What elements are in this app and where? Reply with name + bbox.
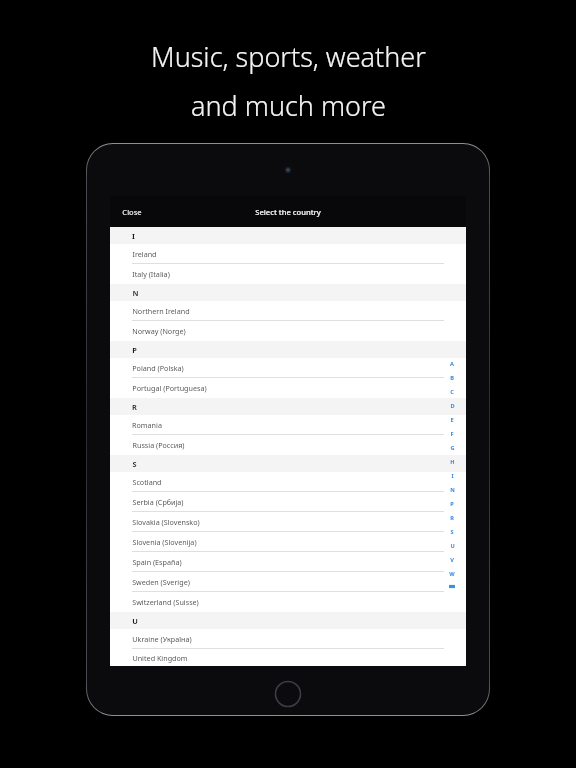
staticText: I [451, 472, 454, 480]
button[interactable]: Portugal (Portuguesa) [110, 378, 466, 398]
button[interactable]: Serbia (Србија) [110, 492, 466, 512]
staticText: V [450, 556, 454, 564]
staticText: Ukraine (Україна) [132, 634, 192, 644]
staticText: W [449, 570, 455, 578]
staticText: Slovenia (Slovenija) [132, 537, 197, 547]
button[interactable]: United Kingdom [110, 649, 466, 666]
staticText: G [450, 444, 455, 452]
button[interactable]: Spain (España) [110, 552, 466, 572]
staticText: Russia (Россия) [132, 440, 185, 450]
staticText: Norway (Norge) [132, 326, 186, 336]
staticText: Northern Ireland [132, 306, 190, 316]
staticText: Romania [132, 420, 162, 430]
staticText: F [450, 430, 454, 438]
staticText: Switzerland (Suisse) [132, 597, 199, 607]
staticText: H [450, 458, 455, 466]
staticText: C [450, 388, 454, 396]
button[interactable]: Italy (Italia) [110, 264, 466, 284]
staticText: Sweden (Sverige) [132, 577, 190, 587]
staticText: Scotland [132, 477, 162, 487]
staticText: S [132, 459, 137, 469]
staticText: Slovakia (Slovensko) [132, 517, 200, 527]
staticText: I [132, 231, 135, 241]
staticText: P [132, 345, 137, 355]
staticText: R [132, 402, 137, 412]
button[interactable]: Romania [110, 415, 466, 435]
staticText: S [450, 528, 454, 536]
button[interactable]: Ukraine (Україна) [110, 629, 466, 649]
button[interactable]: Northern Ireland [110, 301, 466, 321]
staticText: Poland (Polska) [132, 363, 184, 373]
button[interactable]: Close [110, 201, 154, 223]
staticText: Close [122, 207, 142, 217]
staticText: Music, sports, weather [151, 38, 426, 75]
button[interactable]: Slovakia (Slovensko) [110, 512, 466, 532]
staticText: U [450, 542, 455, 550]
button[interactable]: Norway (Norge) [110, 321, 466, 341]
staticText: United Kingdom [132, 653, 188, 663]
staticText: P [450, 500, 454, 508]
button[interactable]: Alphabet index [446, 360, 458, 589]
staticText: and much more [191, 87, 386, 124]
button[interactable]: Switzerland (Suisse) [110, 592, 466, 612]
button[interactable]: Russia (Россия) [110, 435, 466, 455]
button[interactable]: Poland (Polska) [110, 358, 466, 378]
staticText: N [132, 288, 139, 298]
button[interactable]: Sweden (Sverige) [110, 572, 466, 592]
staticText: R [450, 514, 454, 522]
staticText: Spain (España) [132, 557, 182, 567]
button[interactable]: Ireland [110, 244, 466, 264]
staticText: Portugal (Portuguesa) [132, 383, 207, 393]
button[interactable]: Slovenia (Slovenija) [110, 532, 466, 552]
staticText: A [450, 360, 454, 368]
staticText: Select the country [255, 207, 321, 217]
staticText: E [450, 416, 454, 424]
button[interactable]: Scotland [110, 472, 466, 492]
staticText: B [450, 374, 454, 382]
staticText: Serbia (Србија) [132, 497, 184, 507]
staticText: Italy (Italia) [132, 269, 170, 279]
staticText: Ireland [132, 249, 157, 259]
staticText: N [450, 486, 455, 494]
staticText: U [132, 616, 138, 626]
staticText: D [450, 402, 455, 410]
